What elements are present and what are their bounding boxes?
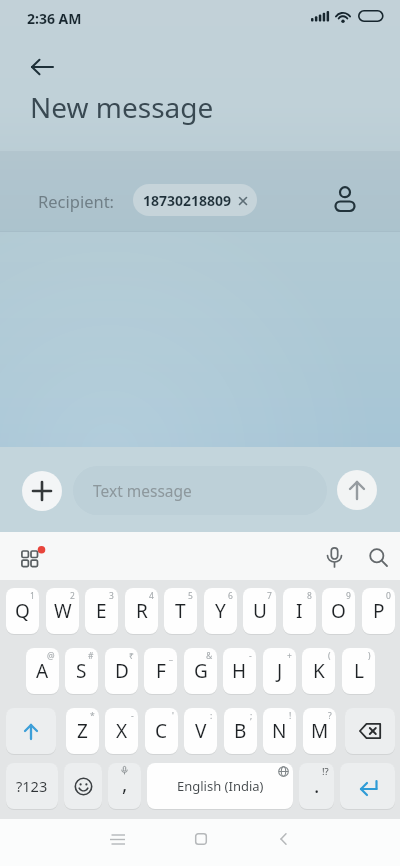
button[interactable]: 18730218809 <box>133 184 257 216</box>
button[interactable] <box>24 50 60 84</box>
button[interactable]: I <box>283 588 316 634</box>
staticText: E <box>96 598 107 624</box>
button[interactable]: F <box>144 648 177 694</box>
staticText: New message <box>30 88 214 126</box>
staticText: M <box>311 718 329 744</box>
button[interactable]: K <box>302 648 335 694</box>
button[interactable] <box>6 708 56 754</box>
button[interactable] <box>14 542 52 572</box>
staticText: ' <box>172 710 174 722</box>
staticText: 1 <box>30 590 35 602</box>
button[interactable]: A <box>26 648 59 694</box>
staticText: 4 <box>149 590 154 602</box>
staticText: ! <box>289 710 292 722</box>
staticText: 2 <box>70 590 75 602</box>
staticText: English (India) <box>177 777 264 795</box>
staticText: B <box>234 718 247 744</box>
staticText: @ <box>47 650 55 662</box>
staticText: Z <box>77 718 88 744</box>
button[interactable]: Text message <box>73 466 327 515</box>
button[interactable] <box>264 822 302 856</box>
staticText: F <box>156 658 166 684</box>
button[interactable]: O <box>322 588 355 634</box>
staticText: 8 <box>307 590 312 602</box>
button[interactable]: W <box>46 588 79 634</box>
staticText: 7 <box>267 590 272 602</box>
staticText: # <box>88 650 94 662</box>
button[interactable]: C <box>145 708 178 754</box>
staticText: V <box>195 718 207 744</box>
button[interactable]: D <box>105 648 138 694</box>
staticText: 0 <box>386 590 391 602</box>
button[interactable] <box>340 763 395 809</box>
button[interactable] <box>345 708 395 754</box>
staticText: ? <box>328 710 332 722</box>
button[interactable] <box>362 542 394 572</box>
button[interactable]: Z <box>66 708 99 754</box>
staticText: . <box>314 772 320 799</box>
staticText: C <box>155 718 168 744</box>
button[interactable]: R <box>125 588 158 634</box>
staticText: G <box>194 658 208 684</box>
staticText: I <box>296 598 303 624</box>
staticText: Recipient: <box>38 190 115 212</box>
staticText: ₹ <box>129 650 134 662</box>
staticText: 3 <box>109 590 114 602</box>
button[interactable] <box>64 763 102 809</box>
button[interactable]: P <box>362 588 395 634</box>
button[interactable]: S <box>65 648 98 694</box>
staticText: W <box>54 598 72 624</box>
button[interactable]: B <box>224 708 257 754</box>
button[interactable]: English (India) <box>147 763 293 809</box>
button[interactable]: , <box>108 763 141 809</box>
button[interactable]: G <box>184 648 217 694</box>
staticText: Text message <box>93 480 192 501</box>
staticText: _ <box>169 650 173 662</box>
button[interactable]: L <box>342 648 375 694</box>
staticText: * <box>90 710 95 722</box>
button[interactable]: N <box>263 708 296 754</box>
button[interactable] <box>98 822 136 856</box>
button[interactable]: Y <box>204 588 237 634</box>
staticText: J <box>277 658 283 684</box>
staticText: 5 <box>188 590 193 602</box>
staticText: 6 <box>228 590 233 602</box>
staticText: ?123 <box>16 776 48 796</box>
button[interactable]: U <box>243 588 276 634</box>
staticText: T <box>175 598 186 624</box>
button[interactable]: H <box>223 648 256 694</box>
staticText: + <box>287 650 292 662</box>
staticText: X <box>116 718 128 744</box>
button[interactable]: . <box>299 763 334 809</box>
staticText: R <box>136 598 148 624</box>
staticText: ) <box>368 650 371 662</box>
button[interactable]: J <box>263 648 296 694</box>
button[interactable] <box>22 471 62 511</box>
staticText: L <box>354 658 364 684</box>
staticText: 18730218809 <box>143 191 232 210</box>
button[interactable]: ?123 <box>6 763 58 809</box>
staticText: O <box>331 598 346 624</box>
staticText: !? <box>322 765 329 778</box>
staticText: U <box>253 598 267 624</box>
staticText: Q <box>15 598 30 624</box>
staticText: : <box>210 710 213 722</box>
staticText: A <box>36 658 49 684</box>
button[interactable]: E <box>85 588 118 634</box>
staticText: N <box>272 718 287 744</box>
button[interactable] <box>182 822 220 856</box>
button[interactable]: V <box>184 708 217 754</box>
staticText: K <box>313 658 325 684</box>
staticText: S <box>76 658 87 684</box>
staticText: ; <box>250 710 253 722</box>
staticText: 9 <box>346 590 351 602</box>
button[interactable]: Q <box>6 588 39 634</box>
button[interactable] <box>326 180 364 218</box>
button[interactable]: M <box>303 708 336 754</box>
staticText: H <box>232 658 247 684</box>
button[interactable] <box>337 470 377 510</box>
staticText: - <box>131 710 134 722</box>
button[interactable] <box>318 542 350 572</box>
button[interactable]: T <box>164 588 197 634</box>
button[interactable]: X <box>105 708 138 754</box>
